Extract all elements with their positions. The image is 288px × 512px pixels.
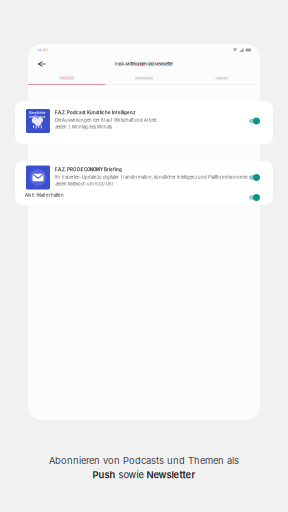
button[interactable]: Newsletter xyxy=(105,72,183,85)
button[interactable]: Benachrichtigung aktiviert xyxy=(247,172,260,182)
staticText: Push sowie Newsletter xyxy=(92,469,195,480)
staticText: Als E-Mail erhalten xyxy=(25,192,64,198)
button[interactable]: Podcasts xyxy=(28,72,105,85)
staticText: F.A.Z. PRO D:ECONOMY Briefing xyxy=(55,167,122,172)
staticText: Push-Mitteilungen und Newsletter xyxy=(114,62,173,66)
staticText: F.A.Z. Podcast Künstliche Intelligenz xyxy=(55,110,135,115)
staticText: Jeden 1. Montag des Monats xyxy=(55,124,112,130)
button[interactable]: Themen xyxy=(183,72,260,85)
button[interactable]: Zurück xyxy=(34,58,49,70)
staticText: Newsletter xyxy=(135,76,153,81)
button[interactable]: Benachrichtigung aktiviert xyxy=(247,116,260,126)
staticText: Intelligenz xyxy=(28,115,45,119)
staticText: Themen xyxy=(215,76,228,81)
staticText: Abonnieren von Podcasts und Themen als xyxy=(49,455,239,466)
staticText: Jeden Mittwoch um 6:00 Uhr xyxy=(55,181,114,187)
staticText: Die Auswirkungen der KI auf Wirtschaft u… xyxy=(55,118,157,123)
button[interactable]: Künstliche xyxy=(15,101,273,144)
staticText: Podcasts xyxy=(59,76,74,80)
button[interactable]: F.A.Z. PRO D:ECONOMY Briefing xyxy=(15,161,273,205)
staticText: 14:41 xyxy=(37,48,48,52)
staticText: Künstliche xyxy=(28,111,45,115)
staticText: Ihr Experten-Update zu digitaler Transfo… xyxy=(55,175,248,180)
button[interactable]: Benachrichtigung aktiviert xyxy=(247,192,260,202)
